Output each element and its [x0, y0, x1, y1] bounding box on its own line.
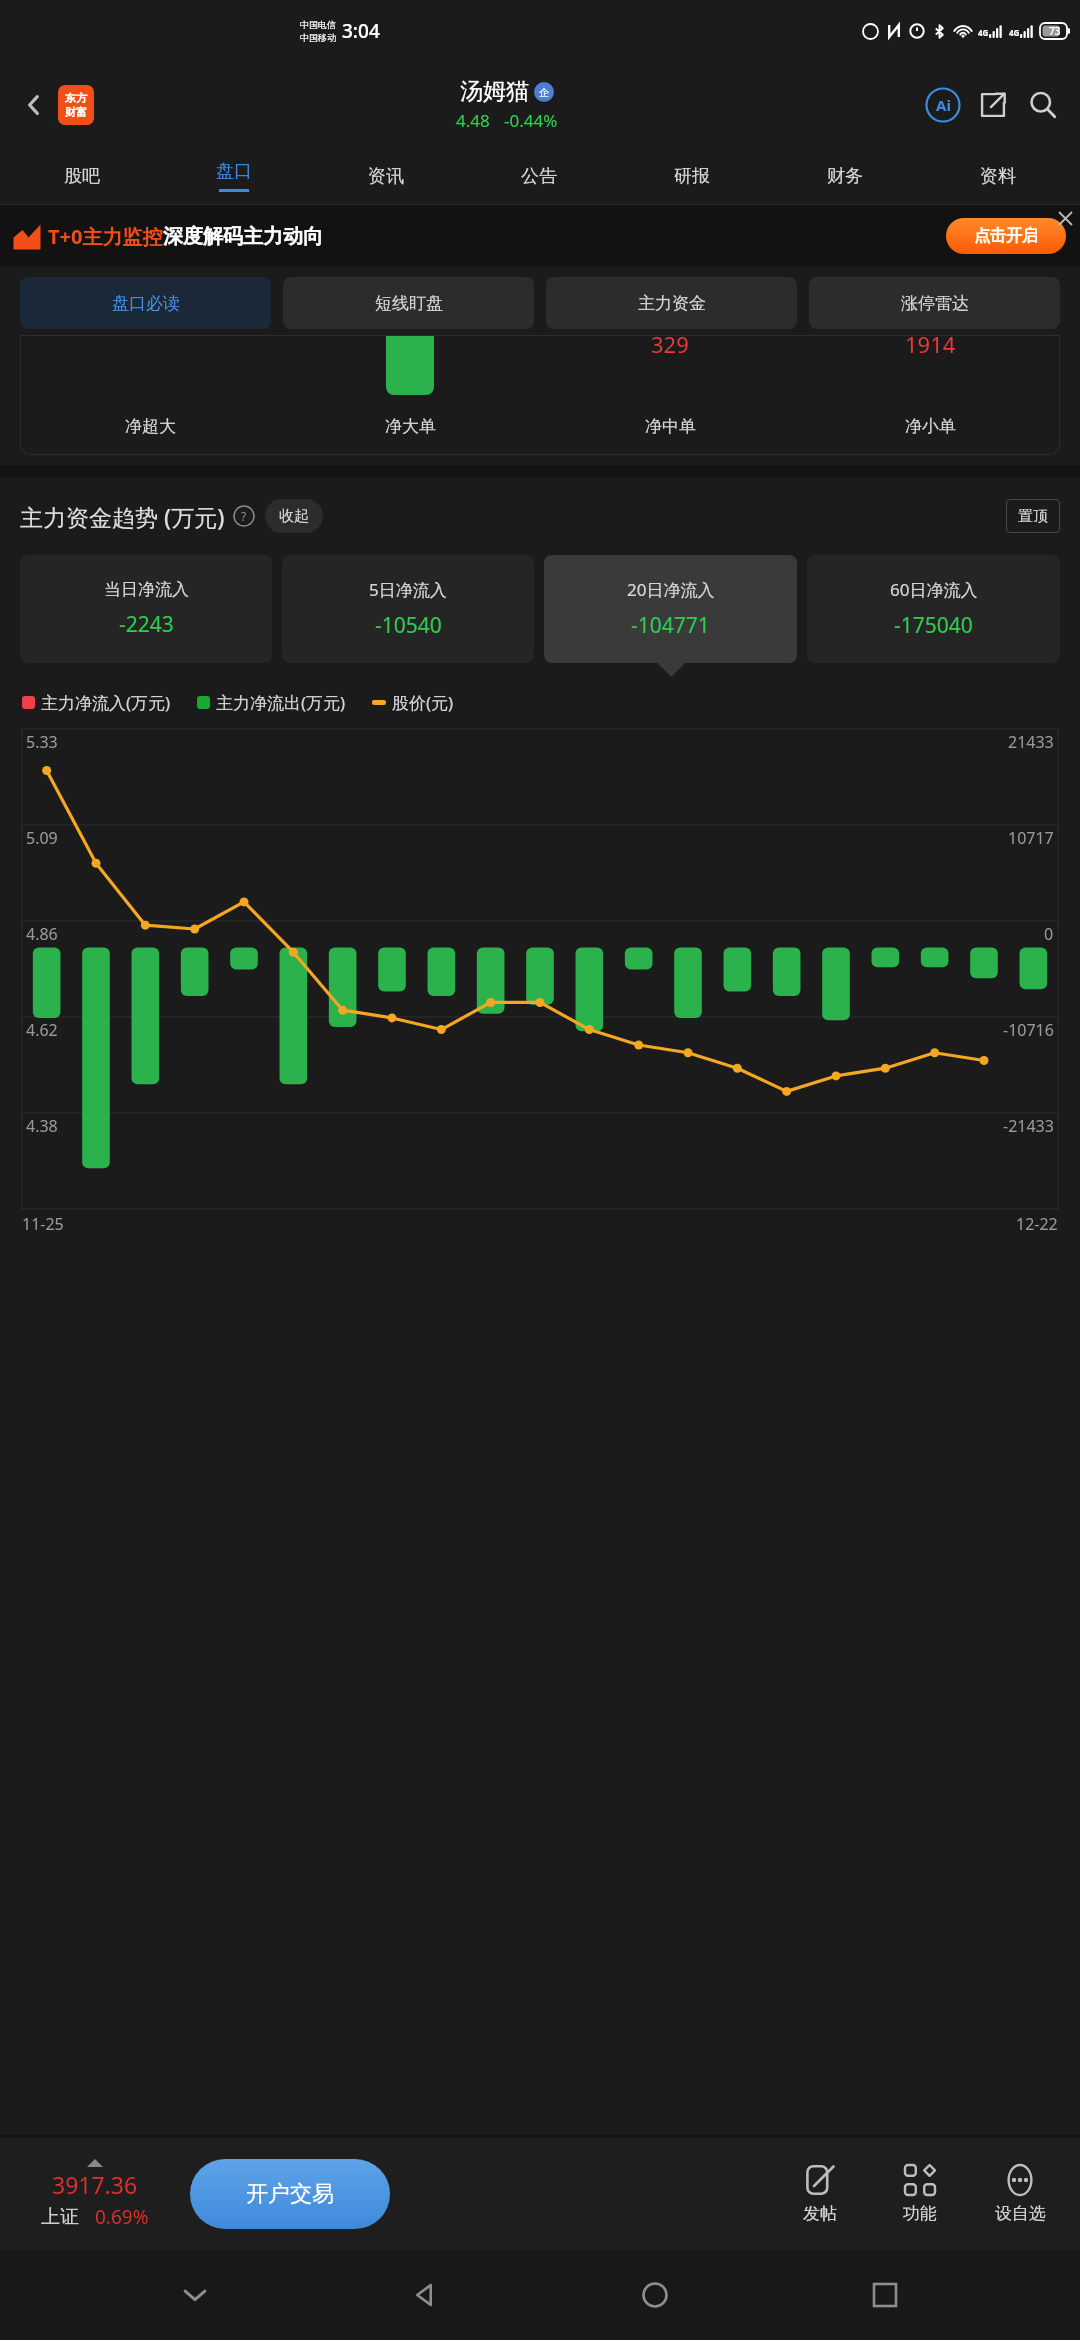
button[interactable]: 盘口必读: [20, 277, 271, 329]
staticText: 5日净流入: [369, 578, 447, 601]
staticText: 东方: [65, 91, 87, 105]
staticText: 4G: [978, 27, 989, 38]
staticText: 置顶: [1018, 507, 1048, 526]
staticText: 企: [539, 86, 549, 99]
staticText: 4.38: [26, 1115, 58, 1137]
staticText: T+0主力监控: [48, 223, 163, 250]
staticText: 当日净流入: [104, 579, 189, 600]
staticText: 点击开启: [974, 226, 1038, 246]
button[interactable]: 东方财富: [58, 85, 94, 125]
button[interactable]: 329: [20, 335, 1060, 455]
staticText: 盘口: [216, 160, 252, 183]
staticText: 11-25: [22, 1213, 64, 1235]
staticText: 短线盯盘: [375, 293, 443, 314]
staticText: 设自选: [995, 2203, 1046, 2224]
staticText: 开户交易: [246, 2180, 334, 2208]
button[interactable]: 股吧: [6, 147, 158, 205]
staticText: 涨停雷达: [901, 293, 969, 314]
staticText: 3:04: [342, 18, 380, 44]
staticText: 0.69%: [95, 2204, 149, 2230]
button[interactable]: Back: [390, 2260, 460, 2330]
staticText: 收起: [279, 507, 309, 526]
staticText: -0.44%: [504, 109, 558, 132]
staticText: 净小单: [905, 416, 956, 437]
button[interactable]: 研报: [615, 147, 768, 205]
button[interactable]: 资料: [921, 147, 1074, 205]
staticText: 发帖: [803, 2203, 837, 2224]
button[interactable]: 公告: [462, 147, 615, 205]
staticText: -175040: [894, 611, 973, 640]
staticText: 12-22: [1016, 1213, 1058, 1235]
button[interactable]: 主力资金: [546, 277, 797, 329]
button[interactable]: 功能: [870, 2138, 970, 2250]
button[interactable]: 60日净流入: [807, 555, 1060, 663]
staticText: 深度解码主力动向: [163, 224, 323, 249]
staticText: 1914: [905, 335, 956, 359]
staticText: 4.48: [456, 109, 490, 132]
staticText: 73: [1049, 24, 1061, 38]
button[interactable]: 资讯: [310, 147, 462, 205]
staticText: 财富: [65, 105, 87, 119]
staticText: 财务: [827, 165, 863, 188]
staticText: 净大单: [385, 416, 436, 437]
staticText: 研报: [674, 165, 710, 188]
button[interactable]: 财务: [768, 147, 921, 205]
button[interactable]: Search: [1020, 82, 1066, 128]
staticText: 净超大: [125, 416, 176, 437]
button[interactable]: 收起: [265, 499, 323, 533]
staticText: 汤姆猫: [460, 77, 529, 106]
staticText: 资料: [980, 165, 1016, 188]
staticText: 主力资金趋势 (万元): [20, 501, 225, 532]
button[interactable]: 置顶: [1006, 499, 1060, 533]
staticText: 20日净流入: [627, 578, 715, 601]
button[interactable]: Home: [620, 2260, 690, 2330]
button[interactable]: 20日净流入: [544, 555, 797, 663]
staticText: 21433: [1008, 731, 1054, 753]
staticText: 股吧: [64, 165, 100, 188]
staticText: 4G: [1009, 27, 1020, 38]
button[interactable]: Share: [970, 82, 1016, 128]
staticText: 主力资金: [638, 293, 706, 314]
staticText: -104771: [631, 611, 710, 640]
button[interactable]: Help: [233, 505, 255, 527]
button[interactable]: 点击开启: [946, 218, 1066, 254]
staticText: -21433: [1003, 1115, 1054, 1137]
button[interactable]: 设自选: [970, 2138, 1070, 2250]
staticText: 盘口必读: [112, 293, 180, 314]
button[interactable]: 发帖: [770, 2138, 870, 2250]
staticText: ?: [241, 508, 247, 524]
staticText: -10540: [375, 611, 442, 640]
staticText: 60日净流入: [890, 578, 978, 601]
button[interactable]: 5日净流入: [282, 555, 534, 663]
staticText: 中国电信: [300, 19, 336, 30]
button[interactable]: 开户交易: [190, 2159, 390, 2229]
button[interactable]: 3917.36: [0, 2138, 190, 2250]
button[interactable]: 涨停雷达: [809, 277, 1060, 329]
button[interactable]: Close: [1054, 207, 1076, 229]
staticText: 资讯: [368, 165, 404, 188]
staticText: 功能: [903, 2203, 937, 2224]
button[interactable]: 盘口: [158, 147, 310, 205]
button[interactable]: AI: [920, 82, 966, 128]
staticText: 4.62: [26, 1019, 58, 1041]
button[interactable]: 短线盯盘: [283, 277, 534, 329]
staticText: 5.09: [26, 827, 58, 849]
staticText: 4.86: [26, 923, 58, 945]
staticText: 0: [1044, 923, 1054, 945]
staticText: 10717: [1008, 827, 1054, 849]
staticText: 公告: [521, 165, 557, 188]
staticText: 净中单: [645, 416, 696, 437]
staticText: 上证: [41, 2205, 79, 2229]
button[interactable]: Recents: [850, 2260, 920, 2330]
staticText: 5.33: [26, 731, 58, 753]
staticText: 主力净流入(万元): [41, 691, 171, 714]
staticText: 主力净流出(万元): [216, 691, 346, 714]
staticText: 3917.36: [52, 2169, 138, 2200]
staticText: 中国移动: [300, 32, 336, 43]
button[interactable]: 当日净流入: [20, 555, 272, 663]
staticText: 股价(元): [392, 691, 454, 714]
button[interactable]: Back: [14, 85, 54, 125]
staticText: -10716: [1003, 1019, 1054, 1041]
button[interactable]: Down: [160, 2260, 230, 2330]
staticText: -2243: [119, 610, 174, 639]
